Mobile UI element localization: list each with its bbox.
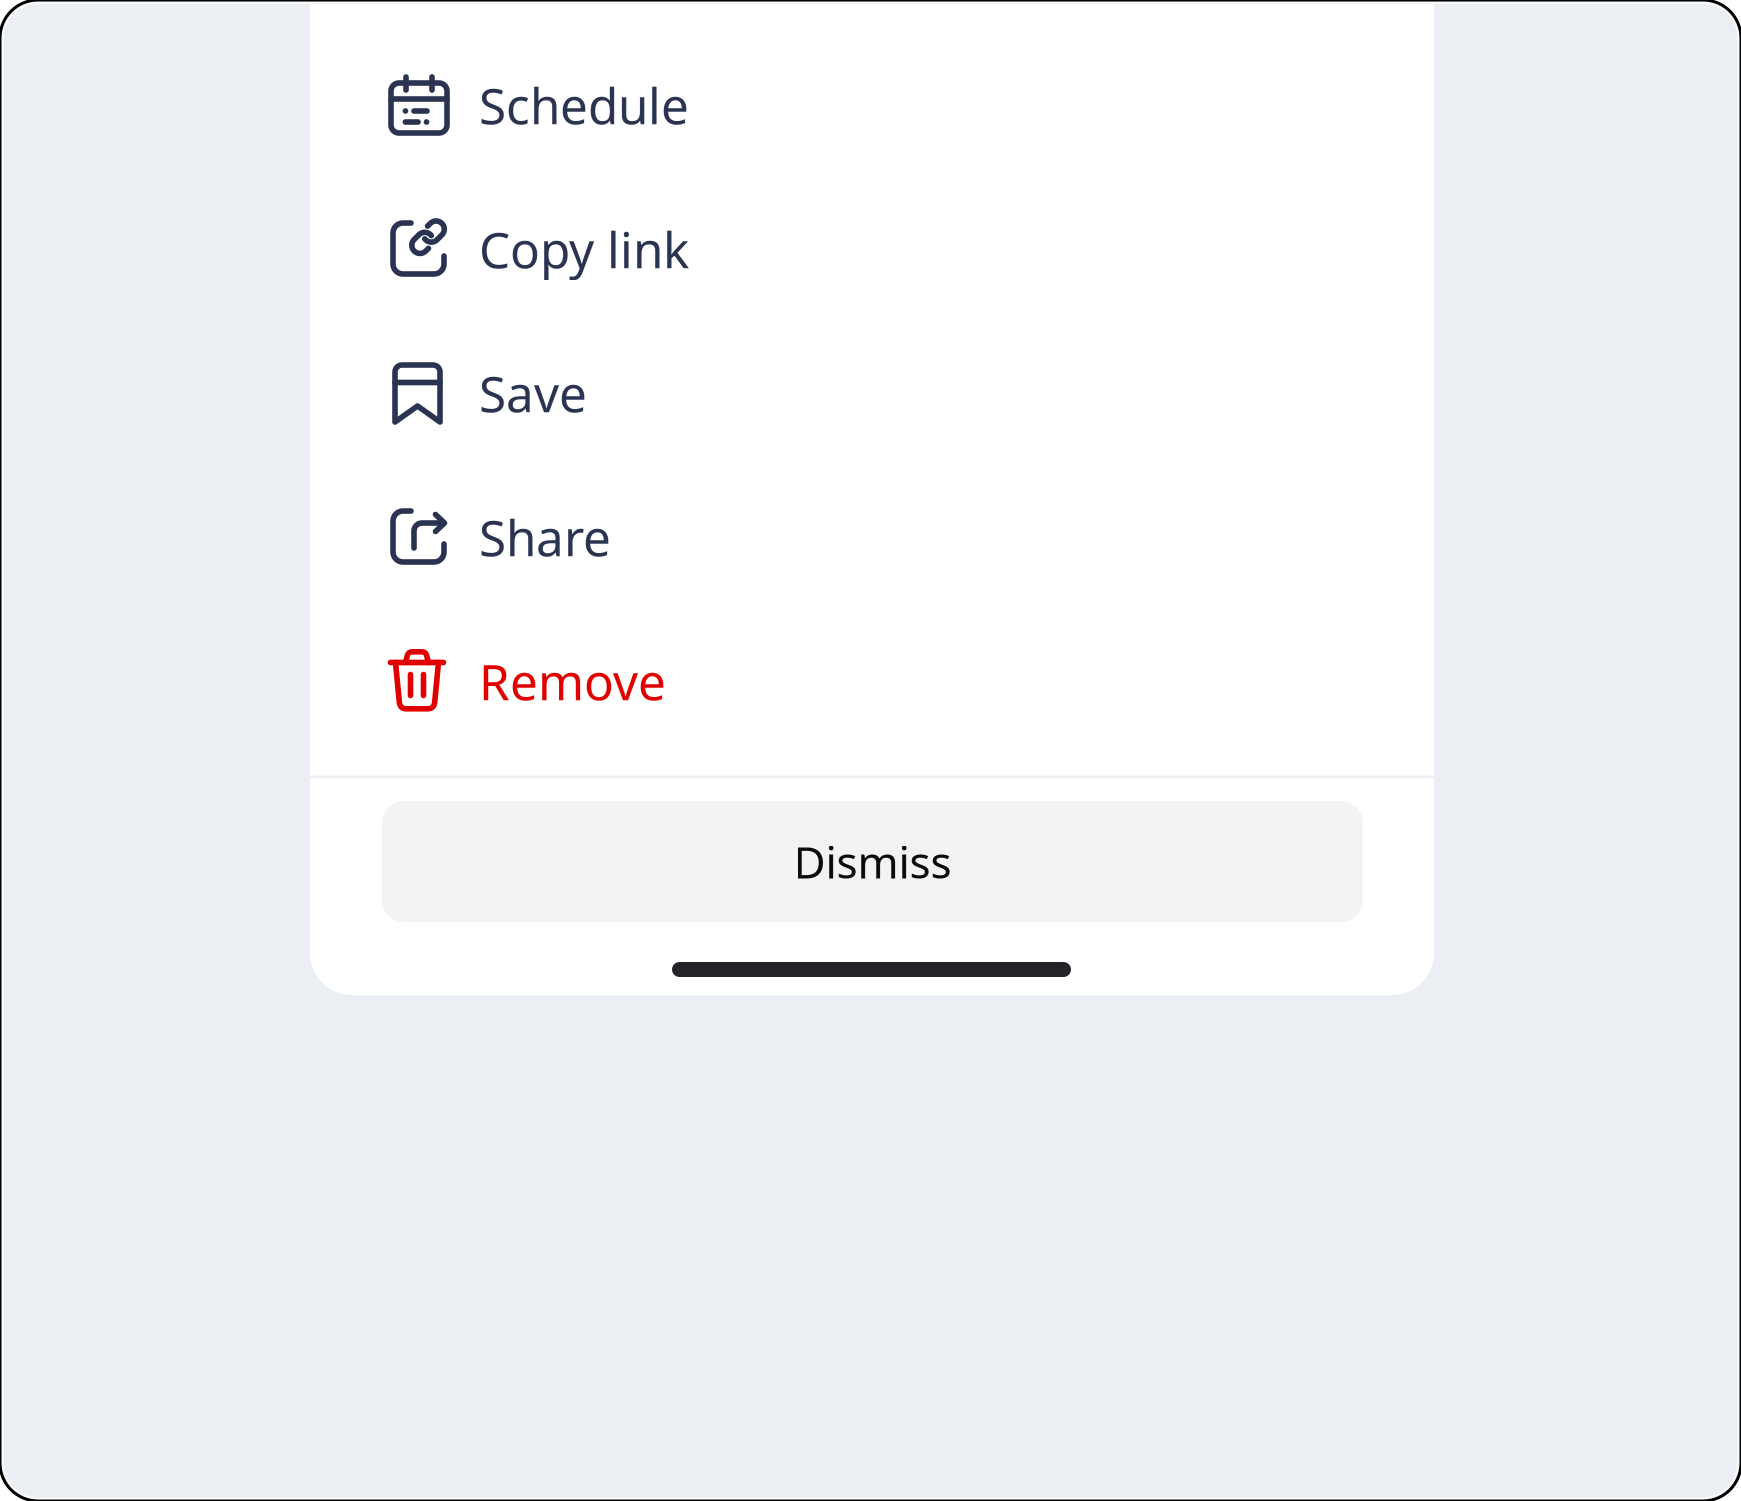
staticText: Remove [479,648,666,714]
button[interactable]: Remove [310,609,1434,753]
staticText: Save [479,360,587,426]
staticText: Dismiss [793,832,951,891]
button[interactable]: Save [310,321,1434,465]
button[interactable]: Copy link [310,177,1434,321]
button[interactable]: Dismiss [382,801,1363,922]
staticText: Share [479,504,611,570]
staticText: Schedule [479,72,689,138]
button[interactable]: Share [310,465,1434,609]
staticText: Copy link [479,216,689,282]
button[interactable]: Schedule [310,33,1434,177]
